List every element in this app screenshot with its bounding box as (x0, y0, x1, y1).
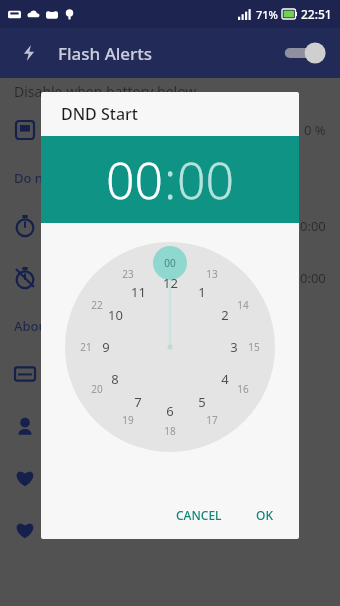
staticText: Flash Alerts (58, 42, 153, 65)
staticText: Disable when battery below (14, 82, 197, 101)
staticText: 0 % (304, 121, 326, 139)
button[interactable]: Changelog (0, 348, 340, 400)
staticText: 6 (166, 402, 174, 420)
button[interactable]: Share (0, 504, 340, 556)
staticText: Rate app (58, 417, 326, 436)
staticText: 5 (198, 393, 206, 411)
button[interactable]: CANCEL (166, 501, 232, 529)
staticText: 0:00 (300, 269, 326, 287)
staticText: 12 (163, 274, 178, 292)
button[interactable]: Rate app (0, 400, 340, 452)
staticText: CANCEL (176, 507, 222, 523)
button[interactable]: 00 (157, 254, 183, 272)
button[interactable]: 23 (115, 265, 141, 283)
staticText: 13 (206, 267, 218, 281)
staticText: Changelog (58, 365, 326, 384)
staticText: DND Start (61, 103, 138, 125)
staticText: 1 (198, 283, 206, 301)
staticText: 3 (230, 338, 238, 356)
staticText: 8 (111, 370, 119, 388)
staticText: 22 (91, 298, 103, 312)
button[interactable]: OK (246, 501, 283, 529)
staticText: 9 (102, 338, 110, 356)
staticText: 21 (80, 340, 92, 354)
staticText: 4 (221, 370, 229, 388)
button[interactable]: Toggle Flash Alerts (282, 38, 328, 68)
staticText: 71% (256, 7, 278, 22)
button[interactable]: 16 (230, 380, 256, 398)
button[interactable]: 12 (157, 273, 183, 293)
button[interactable]: 6 (157, 401, 183, 421)
button[interactable]: 11 (125, 282, 151, 302)
button[interactable]: DND Start (0, 200, 340, 252)
button[interactable]: 00 (106, 146, 164, 214)
button[interactable]: 15 (241, 338, 267, 356)
staticText: 14 (237, 298, 249, 312)
button[interactable]: 9 (93, 337, 119, 357)
button[interactable]: 5 (189, 392, 215, 412)
staticText: DND End (58, 269, 300, 288)
button[interactable]: 17 (199, 411, 225, 429)
button[interactable]: 18 (157, 422, 183, 440)
button[interactable]: 10 (102, 305, 128, 325)
staticText: 15 (248, 340, 260, 354)
staticText: About (14, 317, 52, 335)
staticText: 16 (237, 382, 249, 396)
button[interactable]: 3 (221, 337, 247, 357)
staticText: 7 (134, 393, 142, 411)
button[interactable]: 14 (230, 296, 256, 314)
staticText: 2 (221, 306, 229, 324)
button[interactable]: 1 (189, 282, 215, 302)
button[interactable]: Flash (14, 38, 44, 68)
button[interactable]: Battery saver (0, 104, 340, 156)
staticText: 20 (91, 382, 103, 396)
staticText: OK (256, 507, 273, 523)
button[interactable]: 22 (84, 296, 110, 314)
staticText: 00 (164, 256, 176, 270)
button[interactable]: 00 (177, 146, 235, 214)
staticText: 0:00 (300, 217, 326, 235)
button[interactable]: Donate (0, 452, 340, 504)
staticText: 22:51 (301, 6, 332, 22)
button[interactable]: 20 (84, 380, 110, 398)
staticText: Share (58, 521, 326, 540)
button[interactable]: 7 (125, 392, 151, 412)
button[interactable]: 19 (115, 411, 141, 429)
button[interactable]: 2 (212, 305, 238, 325)
staticText: 19 (122, 413, 134, 427)
staticText: 17 (206, 413, 218, 427)
staticText: Battery saver (58, 121, 304, 140)
staticText: 10 (108, 306, 123, 324)
staticText: : (164, 146, 177, 214)
staticText: 18 (164, 424, 176, 438)
staticText: 11 (131, 283, 146, 301)
button[interactable]: 8 (102, 369, 128, 389)
button[interactable]: 4 (212, 369, 238, 389)
button[interactable]: 21 (73, 338, 99, 356)
button[interactable]: DND End (0, 252, 340, 304)
staticText: DND Start (58, 217, 300, 236)
staticText: Donate (58, 469, 326, 488)
staticText: Do not disturb (14, 169, 104, 187)
staticText: 23 (122, 267, 134, 281)
button[interactable]: 13 (199, 265, 225, 283)
